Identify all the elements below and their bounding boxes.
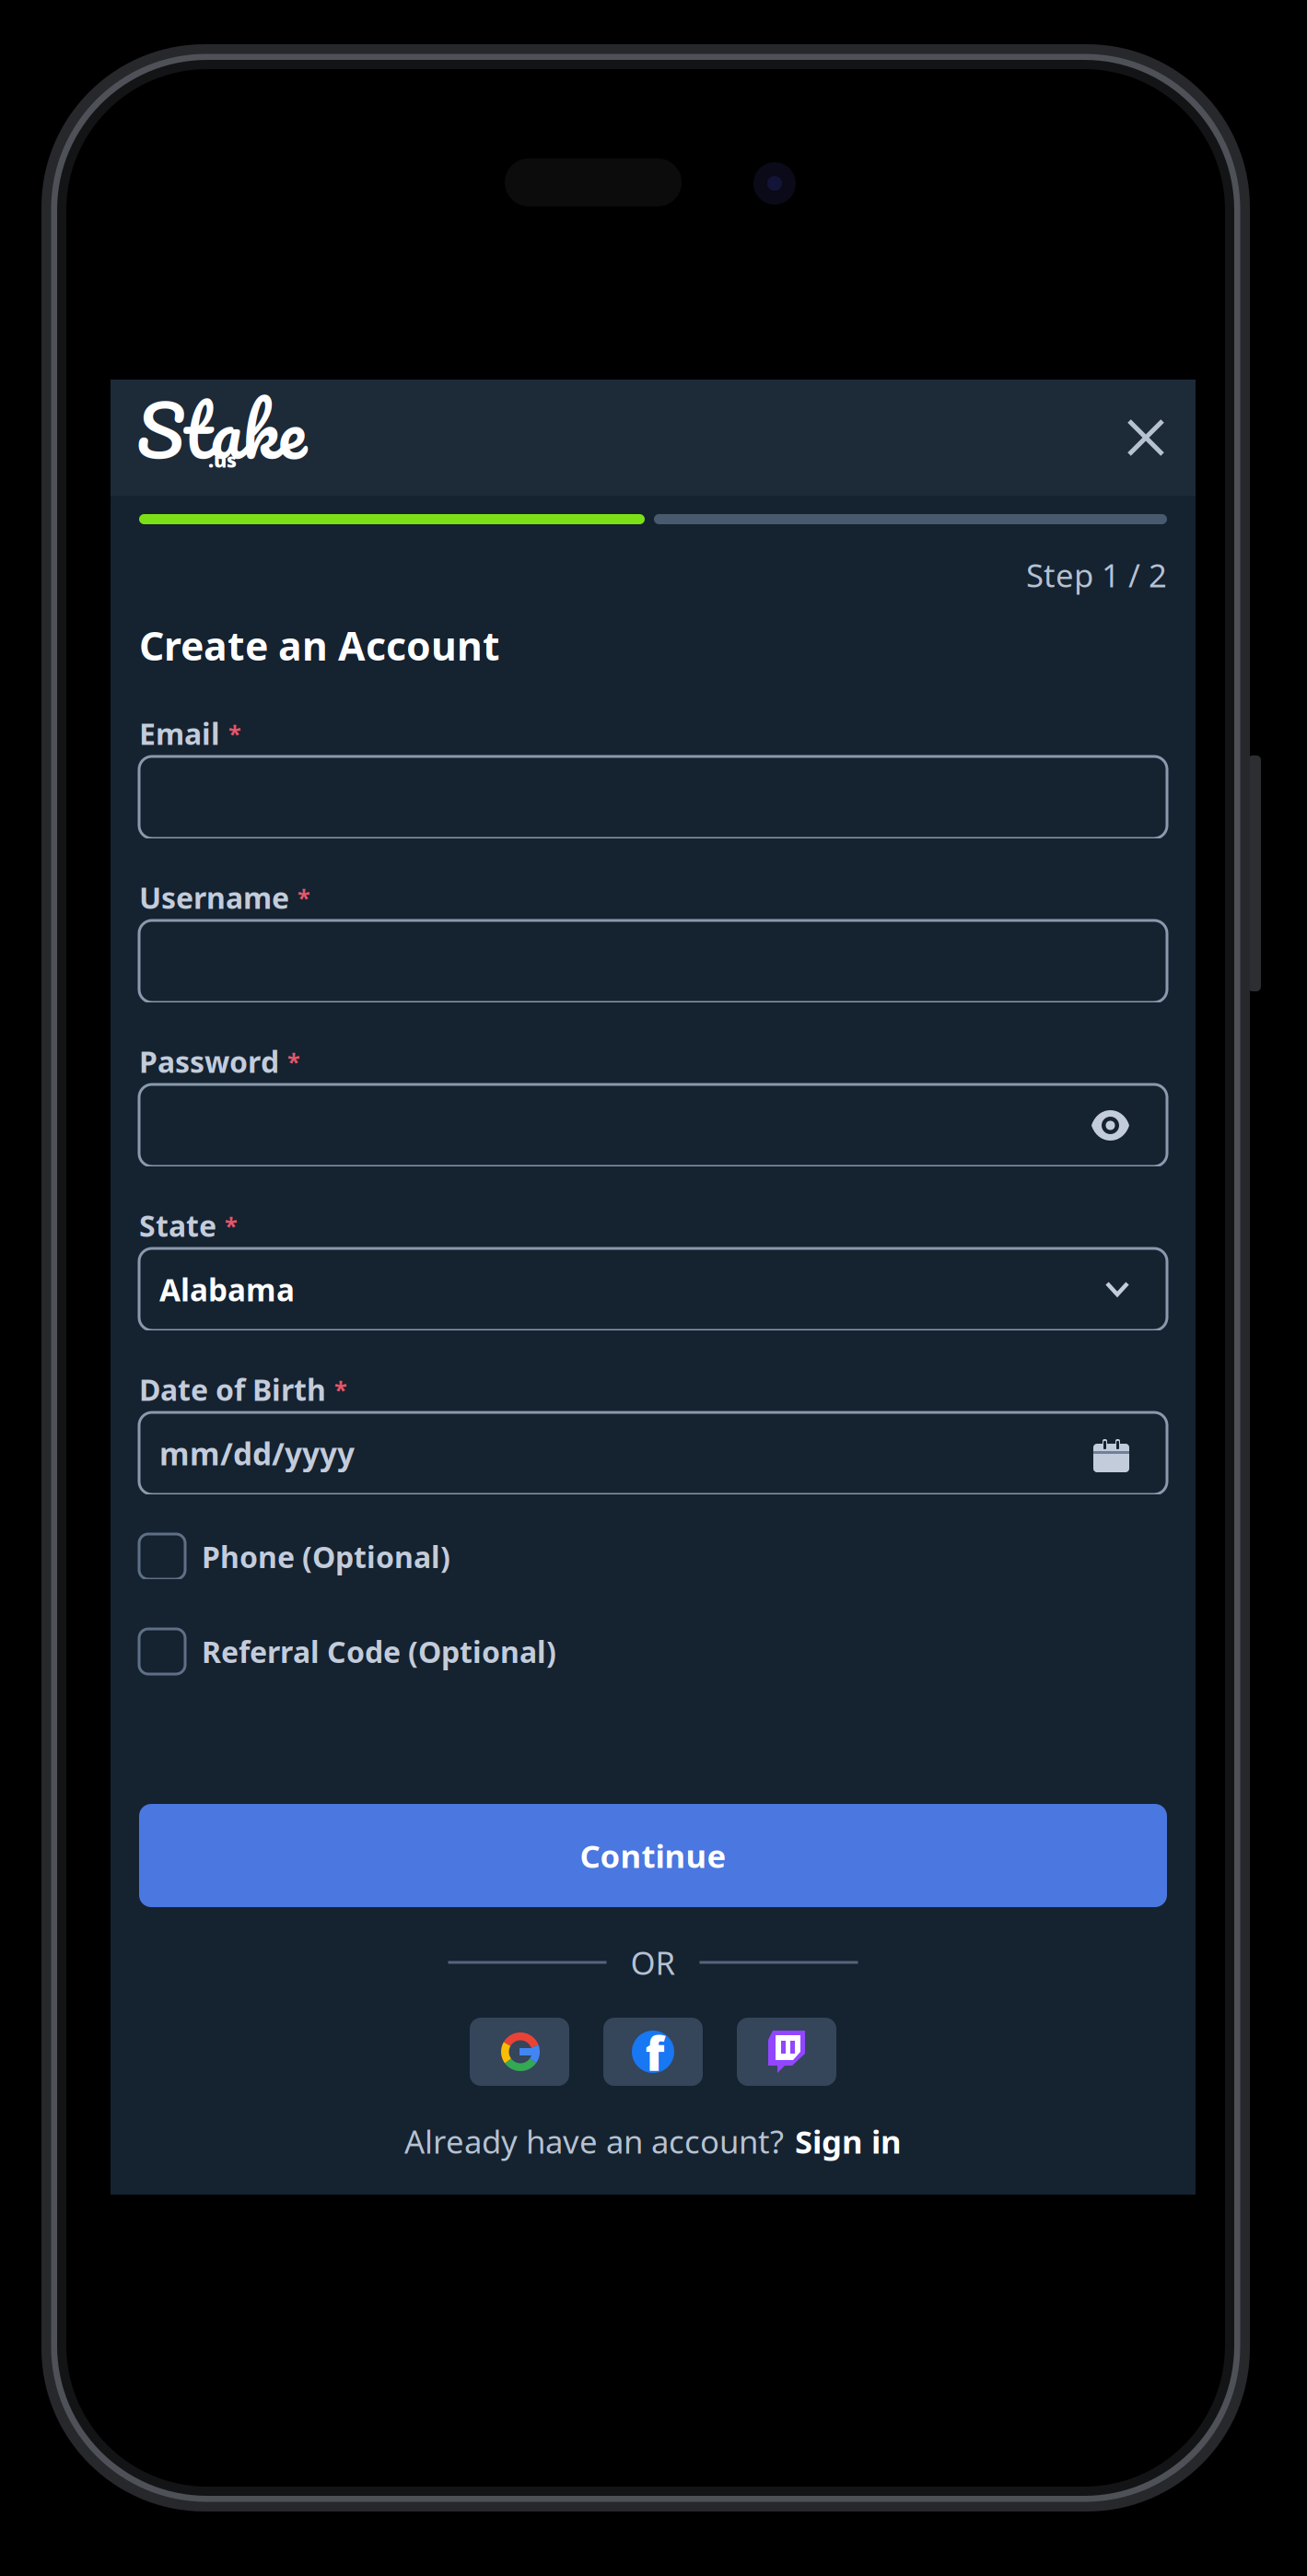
staticText: .us <box>208 447 237 473</box>
staticText: Email <box>139 714 220 753</box>
staticText: Date of Birth <box>139 1370 326 1409</box>
staticText: * <box>228 718 241 749</box>
staticText: Username <box>139 878 289 917</box>
button[interactable]: Continue <box>139 1804 1167 1907</box>
staticText: Sign in <box>795 2120 902 2162</box>
staticText: Alabama <box>159 1269 295 1310</box>
staticText: Already have an account? <box>404 2120 784 2162</box>
button[interactable]: Phone (Optional) <box>139 1534 1167 1579</box>
staticText: Phone (Optional) <box>202 1537 450 1576</box>
staticText: * <box>287 1046 300 1077</box>
staticText: Create an Account <box>139 619 500 672</box>
staticText: f <box>645 2022 665 2084</box>
staticText: Stake <box>136 369 307 490</box>
button[interactable]: Referral Code (Optional) <box>139 1629 1167 1674</box>
button[interactable]: Already have an account? <box>111 2120 1196 2162</box>
button[interactable]: Sign in with Google <box>470 2018 569 2086</box>
staticText: Step 1 / 2 <box>1026 554 1167 596</box>
staticText: * <box>334 1374 347 1405</box>
button[interactable]: Close <box>1109 401 1183 474</box>
button[interactable]: Sign in with Twitch <box>737 2018 836 2086</box>
staticText: * <box>225 1210 238 1241</box>
button[interactable]: Sign in with Facebook <box>603 2018 703 2086</box>
staticText: * <box>298 882 310 913</box>
staticText: Referral Code (Optional) <box>202 1632 556 1671</box>
staticText: Password <box>139 1042 279 1081</box>
staticText: mm/dd/yyyy <box>159 1433 355 1474</box>
staticText: OR <box>630 1941 676 1984</box>
staticText: Continue <box>580 1834 726 1877</box>
staticText: State <box>139 1206 216 1245</box>
